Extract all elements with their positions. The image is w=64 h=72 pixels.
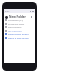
button[interactable]: Downloads folder	[4, 32, 35, 35]
staticText: Program Files	[8, 22, 25, 25]
button[interactable]: My Pictures	[4, 29, 35, 32]
staticText: New Folder	[9, 15, 26, 19]
button[interactable]: Documents	[4, 25, 35, 28]
staticText: Open a new folder location here	[8, 36, 35, 39]
staticText: My Pictures	[8, 29, 22, 32]
button[interactable]: Open a new folder location here	[4, 36, 35, 39]
button[interactable]: App icon	[4, 14, 35, 20]
button[interactable]: Windows (C:)	[4, 18, 35, 21]
staticText: Downloads folder	[8, 32, 29, 35]
staticText: Windows (C:)	[8, 18, 24, 21]
staticText: Documents	[8, 25, 22, 28]
button[interactable]: Program Files	[4, 22, 35, 25]
staticText: 9:41	[5, 10, 10, 13]
other: App icon	[5, 16, 8, 19]
